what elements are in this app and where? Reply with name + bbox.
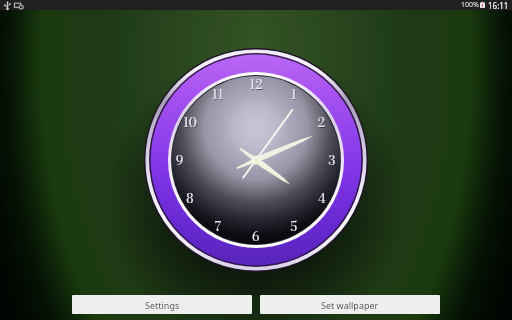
staticText: Settings [145,299,180,311]
other: Battery full [480,1,485,9]
staticText: 16:11 [488,0,509,10]
staticText: 100% [461,0,479,10]
other: Screenshot captured [14,1,24,10]
button[interactable]: Set wallpaper [260,295,440,314]
staticText: Set wallpaper [321,299,379,311]
other: USB connected [4,1,11,10]
button[interactable]: Settings [72,295,252,314]
